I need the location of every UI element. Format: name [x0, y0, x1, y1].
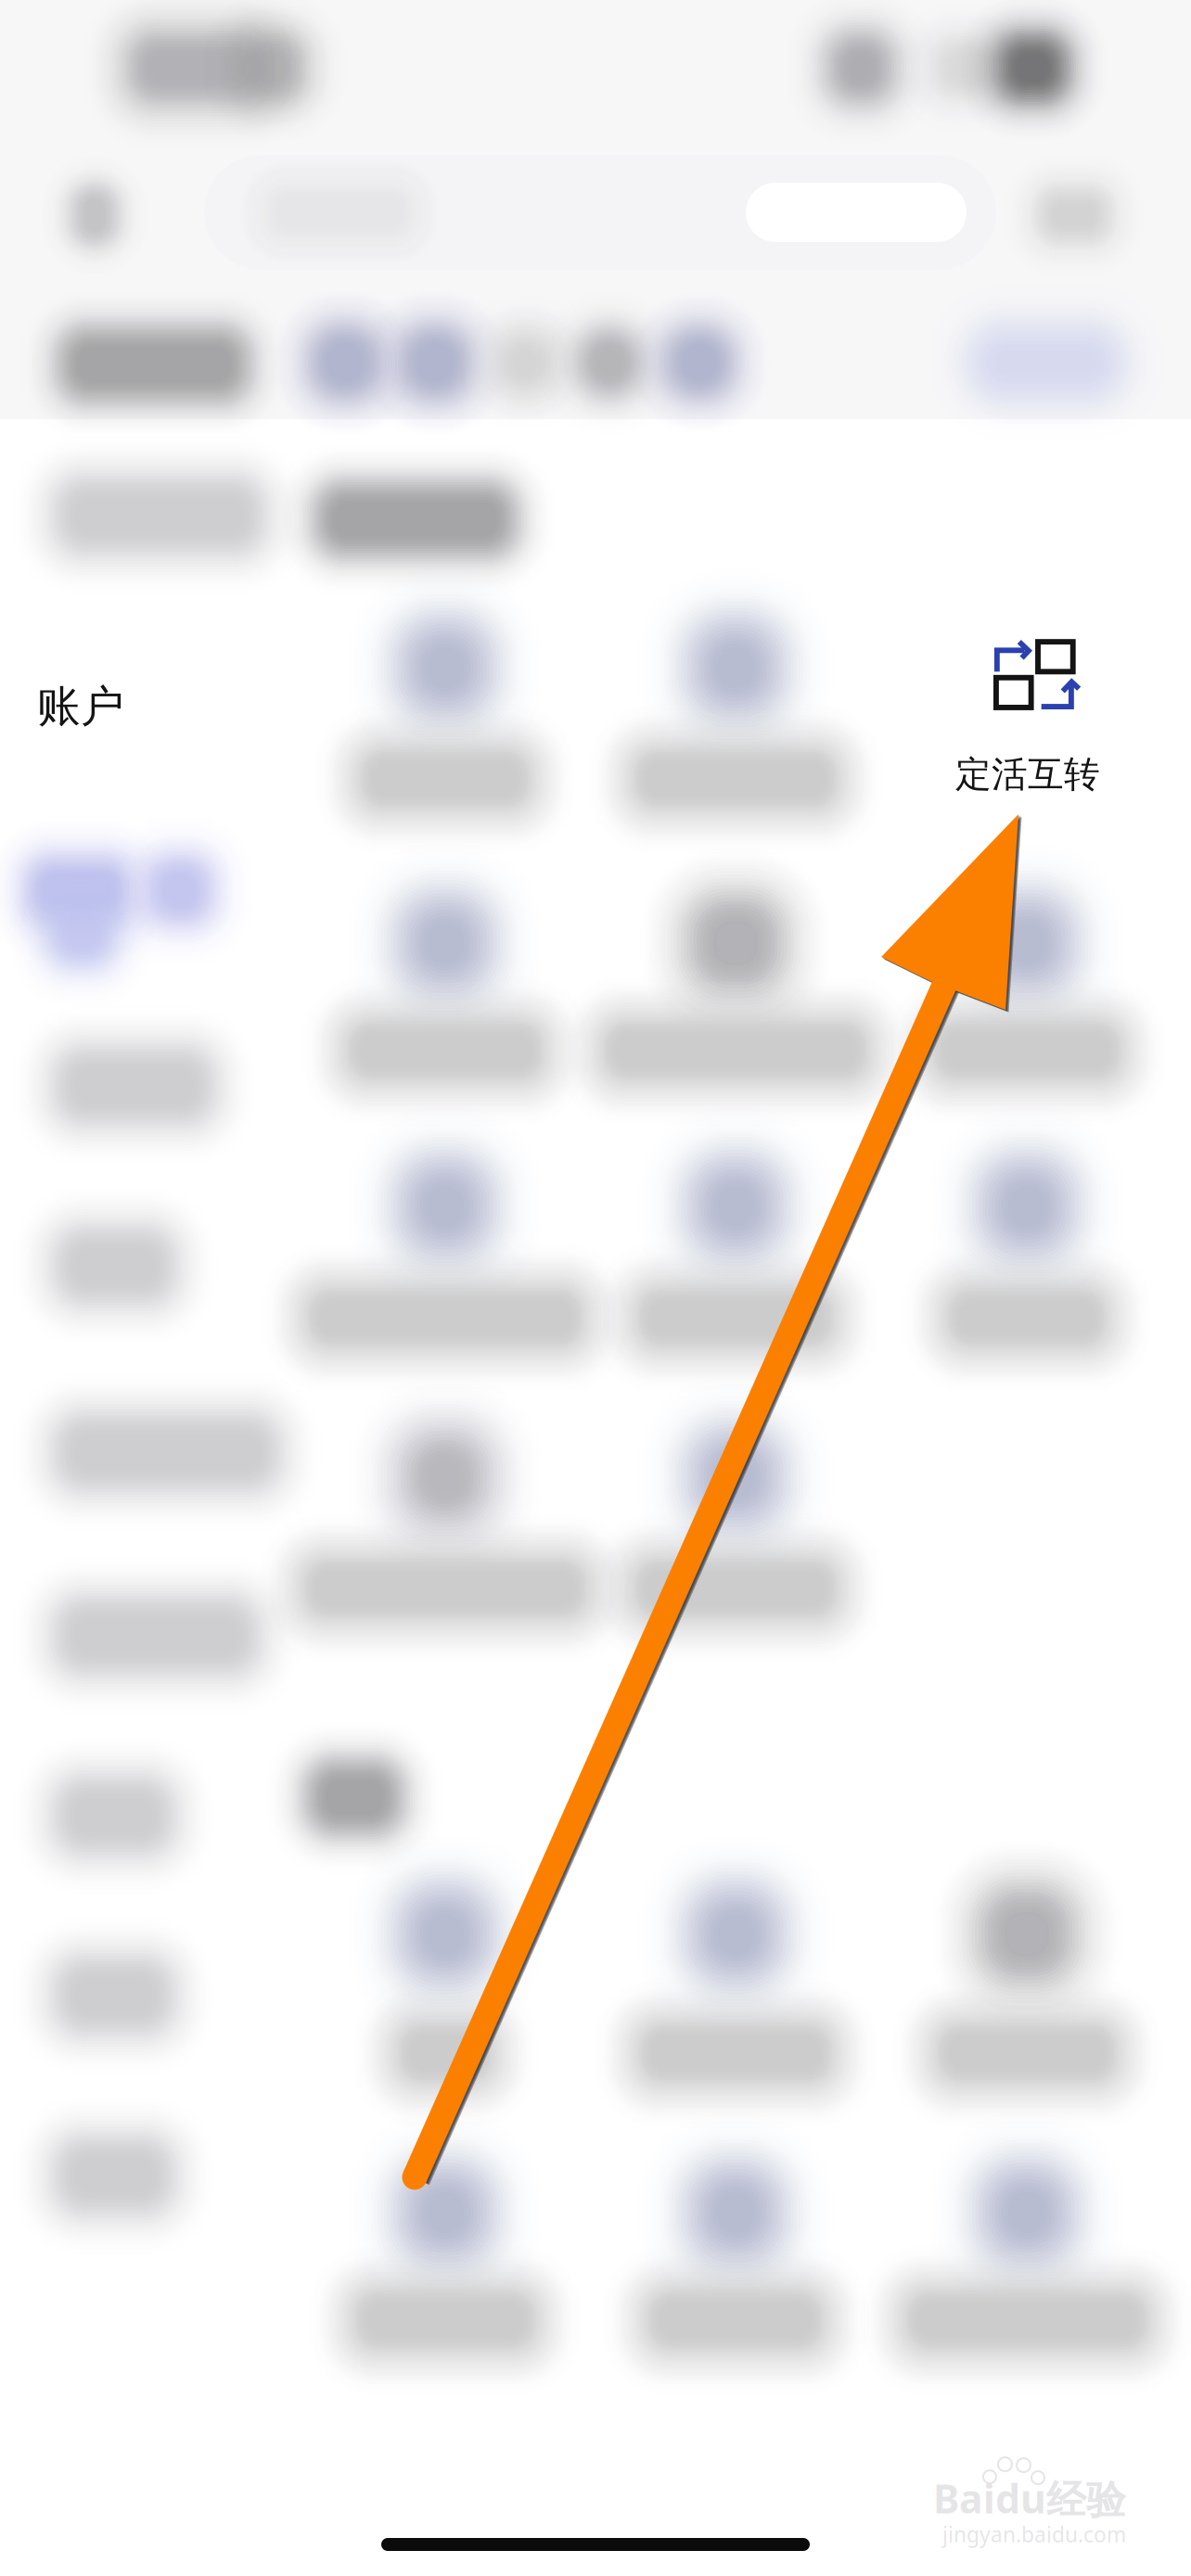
- staticText: Baidu经验: [933, 2472, 1126, 2525]
- button[interactable]: 服务: [304, 1878, 586, 2110]
- button[interactable]: 快捷入口四: [565, 312, 654, 414]
- button[interactable]: 服务: [886, 1878, 1168, 2110]
- button[interactable]: 服务: [886, 1146, 1168, 1378]
- button[interactable]: 服务: [595, 607, 877, 839]
- staticText: jingyan.baidu.com: [942, 2520, 1126, 2548]
- button[interactable]: 更多: [1023, 164, 1125, 266]
- button[interactable]: 服务: [595, 1146, 877, 1378]
- button[interactable]: 服务: [595, 1417, 877, 1649]
- button[interactable]: 分类: [7, 1552, 256, 1719]
- button[interactable]: 快捷入口五: [655, 312, 744, 414]
- button[interactable]: 当前分类: [0, 797, 249, 983]
- button[interactable]: 服务: [886, 881, 1168, 1113]
- button[interactable]: 分类: [7, 1002, 256, 1169]
- button[interactable]: 分类: [7, 2092, 256, 2259]
- button[interactable]: 服务: [304, 881, 586, 1113]
- button[interactable]: 服务: [886, 2150, 1168, 2382]
- button[interactable]: 快捷入口一: [301, 312, 390, 414]
- button[interactable]: 服务: [304, 2150, 586, 2382]
- button[interactable]: 分类: [7, 1182, 256, 1349]
- button[interactable]: 账户: [0, 623, 249, 790]
- button[interactable]: 搜索: [204, 153, 996, 272]
- staticText: 账户: [37, 680, 124, 733]
- staticText: 定活互转: [955, 752, 1100, 796]
- button[interactable]: 服务: [595, 1878, 877, 2110]
- button[interactable]: 分类: [7, 432, 256, 599]
- button[interactable]: 服务: [304, 607, 586, 839]
- button[interactable]: 全部: [935, 298, 1158, 427]
- button[interactable]: 快捷入口三: [480, 312, 570, 414]
- button[interactable]: 分类: [7, 1369, 256, 1536]
- button[interactable]: 服务: [304, 1146, 586, 1378]
- button[interactable]: 分类: [7, 1732, 256, 1899]
- button[interactable]: 分类: [7, 1912, 256, 2079]
- button[interactable]: 快捷入口二: [391, 312, 480, 414]
- button[interactable]: 服务: [304, 1417, 586, 1649]
- button[interactable]: 服务: [595, 2150, 877, 2382]
- button[interactable]: 服务: [595, 881, 877, 1113]
- button[interactable]: 定活互转: [883, 638, 1165, 805]
- button[interactable]: 返回: [50, 164, 139, 266]
